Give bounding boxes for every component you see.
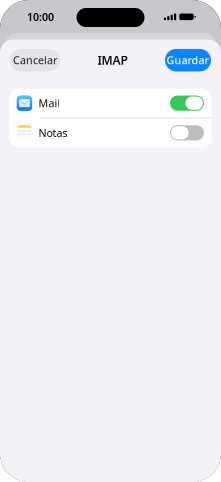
staticText: Mail — [38, 96, 60, 110]
button[interactable]: Mail — [9, 89, 211, 118]
button[interactable]: Notas — [9, 118, 211, 147]
staticText: IMAP — [97, 52, 127, 68]
staticText: Cancelar — [13, 53, 57, 67]
button[interactable]: Cancelar — [10, 49, 60, 71]
staticText: 10:00 — [27, 10, 54, 24]
button[interactable]: Guardar — [165, 49, 211, 71]
staticText: Guardar — [166, 53, 209, 67]
staticText: Notas — [38, 126, 67, 140]
